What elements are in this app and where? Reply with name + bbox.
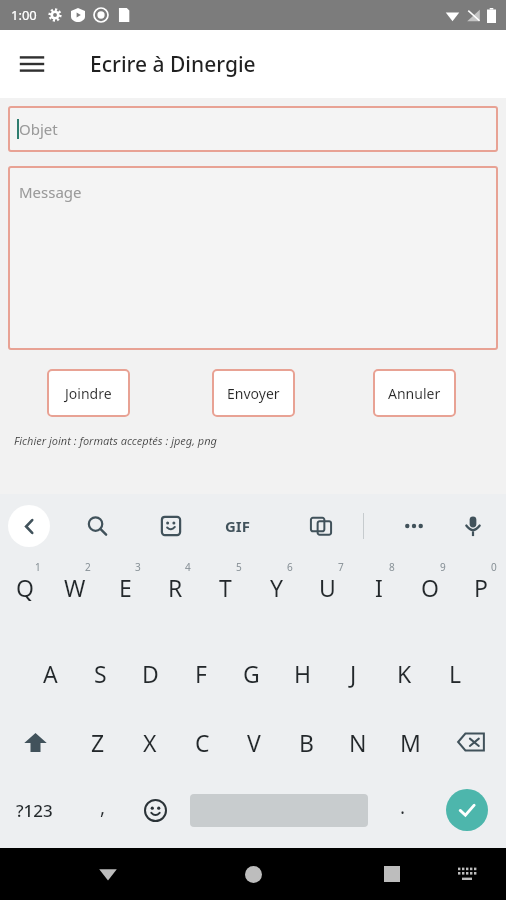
button[interactable]: Annuler	[373, 369, 456, 417]
staticText: 3	[135, 560, 141, 574]
button[interactable]: Home	[231, 852, 275, 896]
staticText: U	[319, 572, 336, 603]
staticText: Message	[19, 182, 82, 202]
button[interactable]: ,	[100, 794, 106, 820]
staticText: W	[64, 572, 86, 603]
staticText: Envoyer	[227, 384, 280, 403]
button[interactable]: C	[176, 708, 228, 776]
staticText: I	[375, 572, 383, 603]
button[interactable]: F	[175, 638, 226, 708]
staticText: A	[43, 658, 58, 689]
button[interactable]: Y	[251, 558, 302, 638]
staticText: L	[449, 658, 462, 689]
staticText: Objet	[19, 119, 58, 139]
staticText: 1	[35, 560, 41, 574]
staticText: 8	[389, 560, 395, 574]
staticText: O	[421, 572, 439, 603]
button[interactable]: Menu	[8, 40, 56, 88]
staticText: D	[142, 658, 159, 689]
button[interactable]: T	[200, 558, 251, 638]
button[interactable]: Shift	[0, 708, 71, 776]
button[interactable]: Enter	[446, 789, 488, 831]
staticText: X	[143, 727, 157, 758]
staticText: 5	[236, 560, 242, 574]
button[interactable]: Voice input	[452, 505, 494, 547]
staticText: H	[294, 658, 312, 689]
staticText: 1:00	[11, 6, 37, 24]
staticText: N	[349, 727, 367, 758]
button[interactable]: N	[332, 708, 384, 776]
staticText: Ecrire à Dinergie	[90, 50, 256, 79]
button[interactable]: V	[228, 708, 280, 776]
staticText: Y	[270, 572, 284, 603]
staticText: Fichier joint : formats acceptés : jpeg,…	[14, 433, 217, 448]
button[interactable]: Back	[86, 852, 130, 896]
button[interactable]: U	[302, 558, 353, 638]
staticText: T	[219, 572, 232, 603]
button[interactable]: E	[100, 558, 150, 638]
button[interactable]: M	[384, 708, 436, 776]
button[interactable]: Message	[8, 166, 498, 350]
button[interactable]: Search	[76, 505, 118, 547]
button[interactable]: Hide keyboard	[450, 857, 484, 891]
staticText: S	[94, 658, 107, 689]
button[interactable]: K	[379, 638, 430, 708]
staticText: Joindre	[65, 384, 112, 403]
button[interactable]: D	[125, 638, 175, 708]
button[interactable]: .	[400, 794, 406, 820]
button[interactable]: I	[353, 558, 404, 638]
staticText: G	[243, 658, 260, 689]
staticText: K	[397, 658, 412, 689]
staticText: 7	[338, 560, 344, 574]
button[interactable]: A	[25, 638, 75, 708]
staticText: V	[247, 727, 261, 758]
staticText: 2	[85, 560, 91, 574]
button[interactable]: W	[50, 558, 100, 638]
staticText: Annuler	[388, 384, 441, 403]
button[interactable]: Emoji	[138, 793, 172, 827]
staticText: 9	[440, 560, 446, 574]
staticText: F	[195, 658, 207, 689]
staticText: 6	[287, 560, 293, 574]
staticText: R	[168, 572, 183, 603]
button[interactable]: J	[328, 638, 379, 708]
button[interactable]: R	[150, 558, 200, 638]
button[interactable]: Envoyer	[212, 369, 295, 417]
staticText: P	[474, 572, 488, 603]
button[interactable]: ?123	[16, 799, 53, 822]
button[interactable]: Joindre	[47, 369, 130, 417]
button[interactable]: B	[280, 708, 332, 776]
button[interactable]: GIF	[225, 516, 250, 536]
staticText: 4	[185, 560, 191, 574]
button[interactable]: Z	[71, 708, 124, 776]
button[interactable]: Backspace	[436, 708, 506, 776]
button[interactable]: L	[430, 638, 481, 708]
button[interactable]: Stickers	[150, 505, 192, 547]
button[interactable]: Q	[0, 558, 50, 638]
staticText: B	[299, 727, 314, 758]
button[interactable]: Translate	[300, 505, 342, 547]
button[interactable]: Recents	[370, 852, 414, 896]
staticText: M	[400, 727, 421, 758]
button[interactable]: O	[404, 558, 455, 638]
button[interactable]: G	[226, 638, 277, 708]
button[interactable]: X	[124, 708, 176, 776]
staticText: 0	[491, 560, 497, 574]
button[interactable]: Objet	[8, 106, 498, 152]
staticText: Q	[16, 572, 34, 603]
button[interactable]: More options	[393, 505, 435, 547]
staticText: E	[119, 572, 132, 603]
staticText: J	[350, 658, 357, 689]
button[interactable]: S	[75, 638, 125, 708]
staticText: C	[195, 727, 210, 758]
button[interactable]: P	[455, 558, 506, 638]
button[interactable]: Back	[8, 505, 50, 547]
staticText: Z	[91, 727, 105, 758]
button[interactable]: H	[277, 638, 328, 708]
